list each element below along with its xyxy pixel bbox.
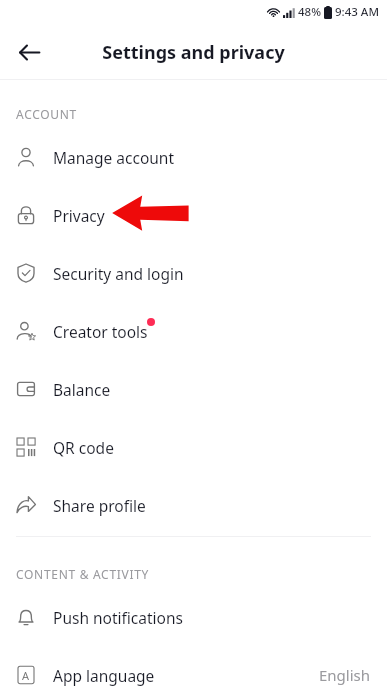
staticText: Security and login: [53, 263, 184, 284]
button[interactable]: Security and login: [0, 248, 387, 298]
button[interactable]: Back: [8, 31, 50, 73]
staticText: CONTENT & ACTIVITY: [16, 566, 150, 582]
staticText: Manage account: [53, 147, 175, 168]
button[interactable]: Push notifications: [0, 592, 387, 642]
staticText: App language: [53, 665, 155, 686]
staticText: Balance: [53, 379, 111, 400]
staticText: 9:43 AM: [335, 4, 379, 20]
staticText: Push notifications: [53, 607, 183, 628]
staticText: English: [319, 665, 371, 685]
staticText: 48%: [298, 4, 321, 20]
staticText: QR code: [53, 437, 114, 458]
staticText: A: [22, 668, 30, 683]
button[interactable]: Privacy: [0, 190, 387, 240]
button[interactable]: A: [0, 650, 387, 693]
staticText: Share profile: [53, 495, 146, 516]
button[interactable]: Creator tools: [0, 306, 387, 356]
button[interactable]: Balance: [0, 364, 387, 414]
staticText: Settings and privacy: [102, 40, 285, 65]
staticText: Creator tools: [53, 321, 148, 342]
button[interactable]: Manage account: [0, 132, 387, 182]
staticText: Privacy: [53, 205, 105, 226]
button[interactable]: QR code: [0, 422, 387, 472]
staticText: ACCOUNT: [16, 106, 77, 122]
button[interactable]: Share profile: [0, 480, 387, 530]
